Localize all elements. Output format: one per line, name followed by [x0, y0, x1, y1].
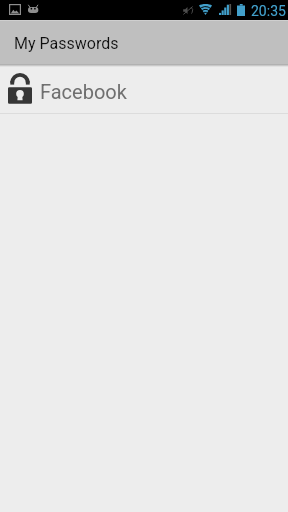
button[interactable]: Facebook	[0, 67, 288, 113]
staticText: My Passwords	[14, 34, 119, 53]
staticText: Facebook	[40, 80, 127, 103]
staticText: 20:35	[251, 3, 286, 19]
